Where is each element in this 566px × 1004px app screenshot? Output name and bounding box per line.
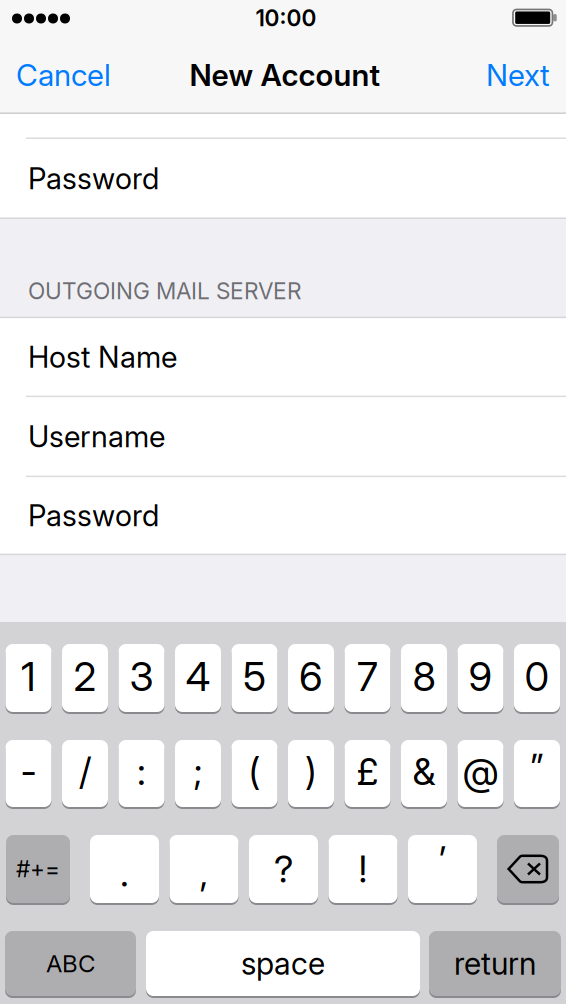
staticText: OUTGOING MAIL SERVER: [28, 277, 302, 305]
button[interactable]: Delete: [497, 834, 559, 904]
staticText: 7: [357, 652, 378, 701]
button[interactable]: -: [5, 739, 51, 808]
staticText: &: [412, 749, 435, 794]
button[interactable]: ?: [249, 834, 318, 904]
button[interactable]: £: [344, 739, 390, 808]
button[interactable]: ,: [169, 834, 238, 904]
staticText: 1: [21, 652, 36, 701]
staticText: Username: [28, 419, 165, 454]
staticText: :: [137, 749, 146, 794]
staticText: ”: [530, 745, 544, 790]
button[interactable]: Username: [0, 397, 566, 476]
button[interactable]: 4: [175, 643, 221, 713]
button[interactable]: #+=: [6, 834, 70, 904]
staticText: 5: [243, 652, 266, 701]
staticText: /: [79, 749, 91, 794]
staticText: Next: [486, 57, 550, 93]
staticText: Password: [28, 161, 159, 196]
button[interactable]: 8: [401, 643, 447, 713]
button[interactable]: :: [118, 739, 164, 808]
button[interactable]: 5: [231, 643, 277, 713]
staticText: ;: [193, 749, 202, 794]
staticText: return: [454, 945, 536, 982]
staticText: space: [241, 945, 325, 982]
button[interactable]: /: [62, 739, 108, 808]
staticText: @: [462, 749, 498, 794]
button[interactable]: return: [429, 930, 561, 997]
staticText: ,: [199, 850, 208, 896]
staticText: ): [305, 749, 317, 794]
staticText: 9: [468, 652, 492, 701]
staticText: !: [358, 846, 367, 892]
staticText: £: [356, 749, 378, 794]
button[interactable]: ABC: [5, 930, 136, 997]
staticText: .: [120, 850, 129, 896]
button[interactable]: Password: [0, 139, 566, 218]
button[interactable]: 2: [62, 643, 108, 713]
button[interactable]: ): [288, 739, 334, 808]
staticText: 10:00: [255, 4, 316, 32]
button[interactable]: 9: [457, 643, 503, 713]
button[interactable]: 3: [118, 643, 164, 713]
staticText: ’: [438, 837, 446, 883]
staticText: Host Name: [28, 339, 177, 375]
button[interactable]: Cancel: [0, 47, 136, 103]
button[interactable]: @: [457, 739, 503, 808]
staticText: ABC: [46, 949, 95, 978]
staticText: Password: [28, 498, 159, 533]
staticText: 6: [299, 652, 323, 701]
button[interactable]: Password: [0, 477, 566, 554]
button[interactable]: ’: [408, 834, 477, 904]
staticText: -: [20, 749, 36, 794]
staticText: (: [248, 749, 260, 794]
button[interactable]: ”: [514, 739, 560, 808]
staticText: ?: [274, 846, 293, 892]
button[interactable]: 0: [514, 643, 560, 713]
staticText: 3: [129, 652, 153, 701]
button[interactable]: Next: [450, 47, 566, 103]
staticText: 0: [524, 652, 549, 701]
button[interactable]: 1: [5, 643, 51, 713]
button[interactable]: &: [401, 739, 447, 808]
staticText: 2: [73, 652, 96, 701]
staticText: Cancel: [16, 57, 111, 93]
button[interactable]: (: [231, 739, 277, 808]
button[interactable]: !: [328, 834, 397, 904]
button[interactable]: [0, 114, 566, 138]
button[interactable]: 6: [288, 643, 334, 713]
button[interactable]: ;: [175, 739, 221, 808]
staticText: 4: [185, 652, 210, 701]
staticText: 8: [412, 652, 435, 701]
button[interactable]: .: [90, 834, 159, 904]
staticText: New Account: [189, 57, 380, 93]
button[interactable]: Host Name: [0, 318, 566, 396]
button[interactable]: 7: [344, 643, 390, 713]
button[interactable]: space: [146, 930, 420, 997]
staticText: #+=: [16, 855, 60, 883]
